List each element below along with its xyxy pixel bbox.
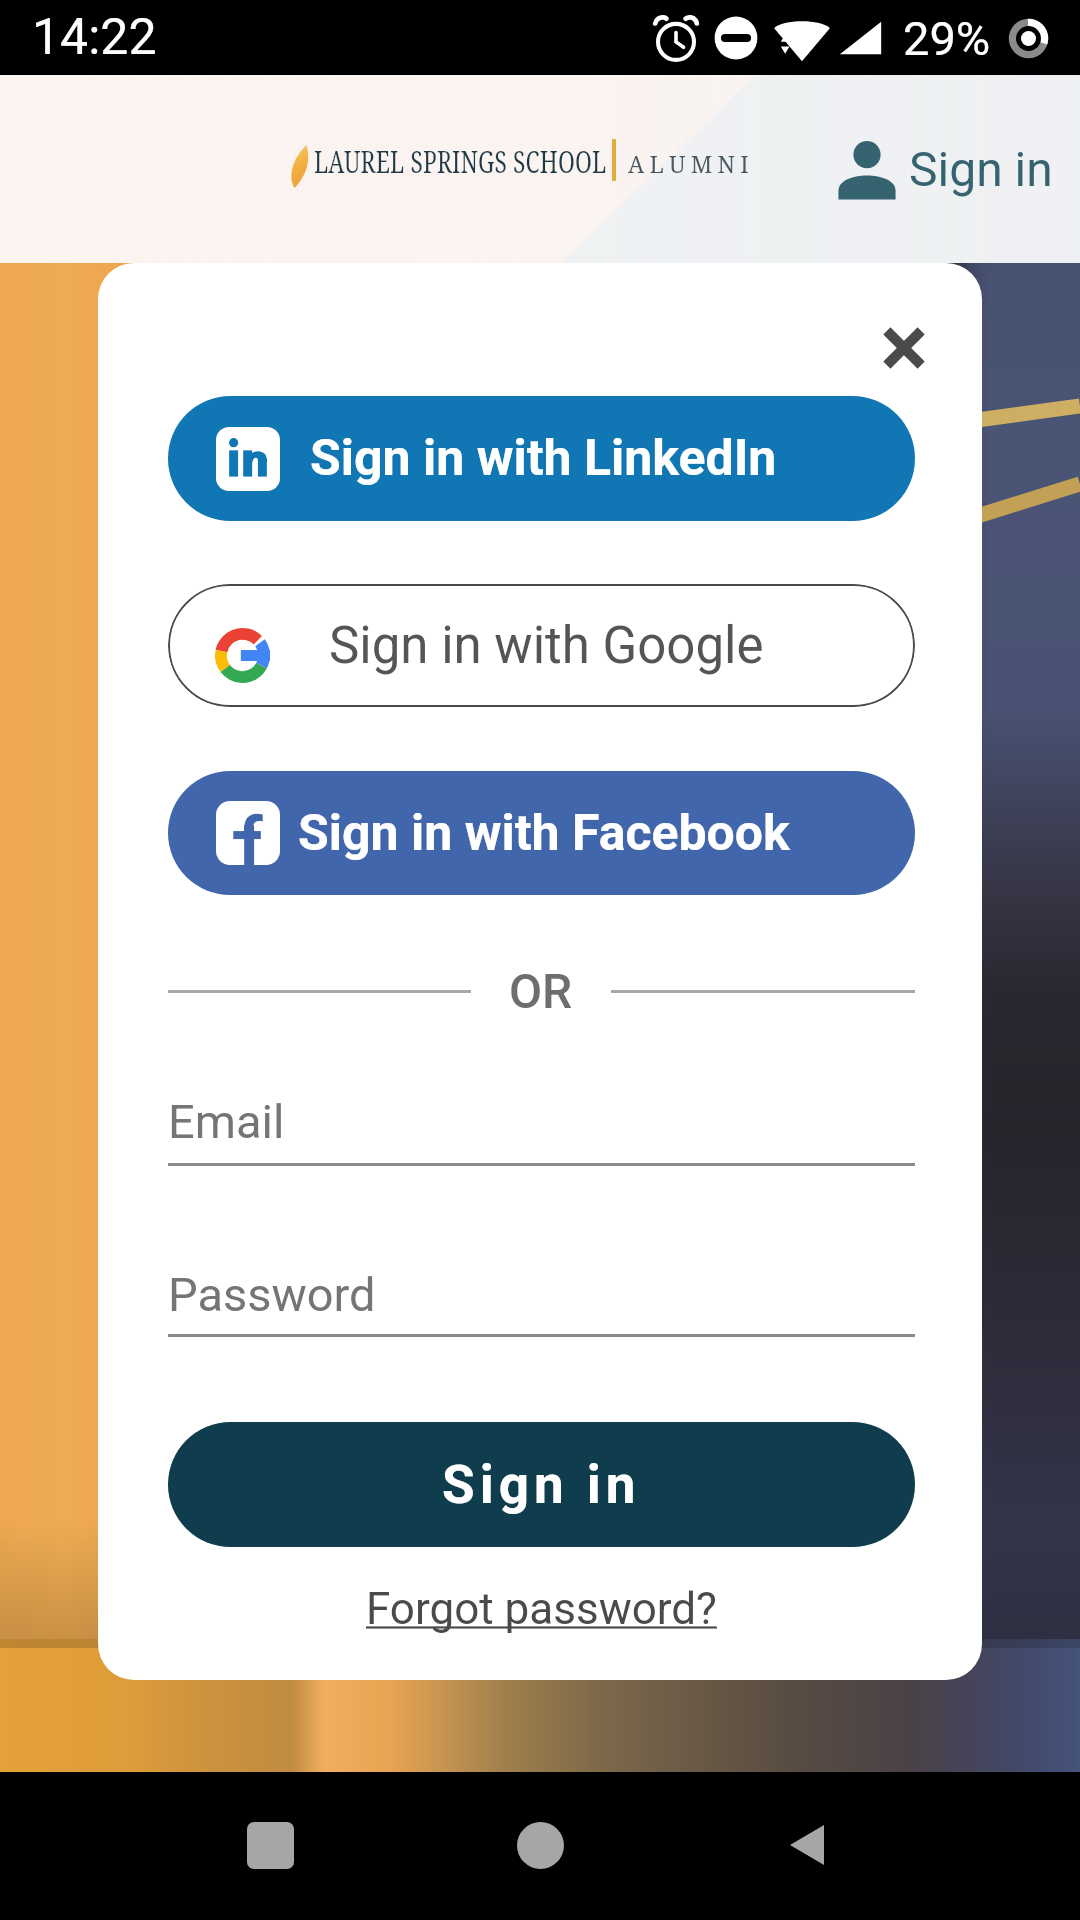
button[interactable]: Recents xyxy=(200,1775,340,1915)
staticText: LAUREL SPRINGS SCHOOL xyxy=(314,140,606,182)
staticText: Sign in xyxy=(909,141,1053,197)
staticText: 29% xyxy=(903,11,991,66)
staticText: Sign in with Facebook xyxy=(298,804,790,863)
button[interactable]: Close xyxy=(858,302,950,394)
staticText: OR xyxy=(509,963,573,1019)
button[interactable]: Back xyxy=(740,1775,880,1915)
button[interactable]: Sign in xyxy=(833,107,1053,231)
staticText: Sign in with Google xyxy=(329,616,764,676)
staticText: 14:22 xyxy=(32,8,157,67)
button[interactable]: Forgot password? xyxy=(366,1583,717,1635)
button[interactable]: Sign in with Facebook xyxy=(168,771,915,895)
staticText: Email xyxy=(168,1094,285,1149)
button[interactable]: Sign in with LinkedIn xyxy=(168,396,915,521)
staticText: Sign in with LinkedIn xyxy=(310,429,777,488)
button[interactable]: Sign in xyxy=(168,1422,915,1547)
staticText: Sign in xyxy=(442,1454,641,1516)
button[interactable]: Sign in with Google xyxy=(168,584,915,707)
staticText: Password xyxy=(168,1267,376,1322)
staticText: ALUMNI xyxy=(628,148,754,179)
button[interactable]: Home xyxy=(470,1775,610,1915)
